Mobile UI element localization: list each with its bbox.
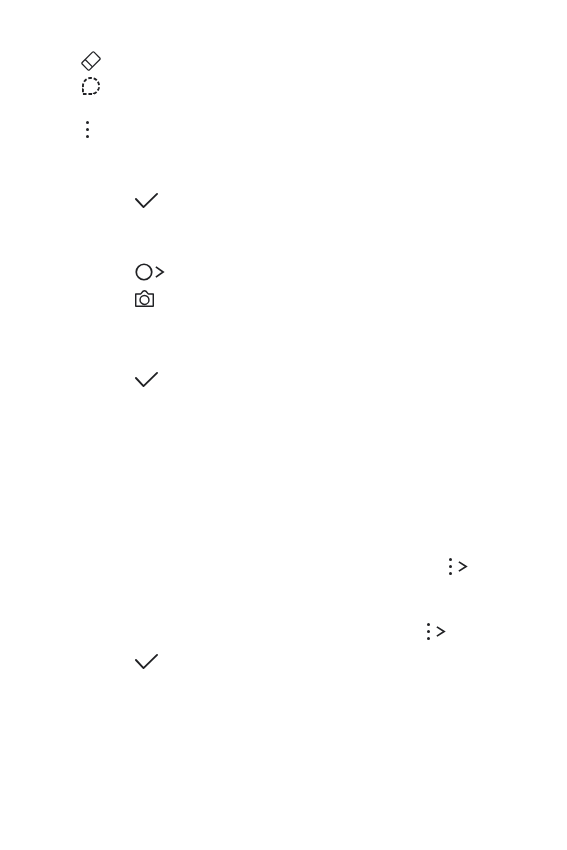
button[interactable]: Pen colour [0, 249, 567, 295]
button[interactable]: More options [0, 605, 567, 657]
button[interactable]: Shape select [72, 69, 110, 103]
button[interactable]: Option selected [0, 637, 567, 685]
button[interactable]: Option selected [0, 355, 567, 403]
button[interactable]: Take photo [0, 278, 567, 318]
button[interactable]: Eraser [72, 44, 110, 78]
button[interactable]: Option selected [0, 176, 567, 224]
button[interactable]: More drawing tools [68, 112, 106, 146]
button[interactable]: More options [0, 540, 567, 592]
